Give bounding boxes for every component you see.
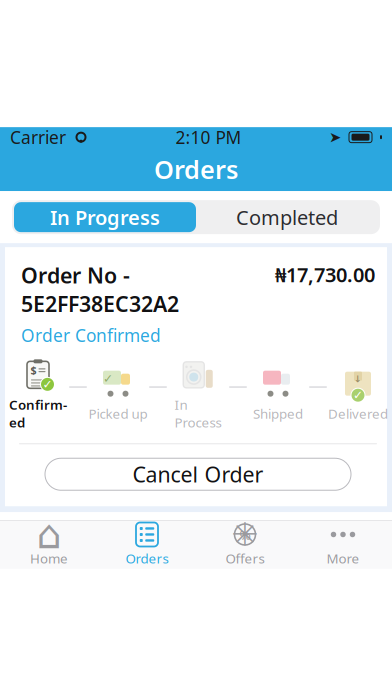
button[interactable]: More	[294, 521, 392, 569]
staticText: Offers	[225, 549, 264, 567]
button[interactable]: Cancel Order	[45, 458, 351, 490]
staticText: In Progress	[50, 204, 160, 230]
staticText: Delivered	[328, 405, 388, 422]
staticText: Picked up	[88, 405, 147, 422]
button[interactable]: ⌂	[0, 521, 98, 569]
staticText: ₦17,730.00	[275, 261, 375, 288]
staticText: ✓	[103, 372, 113, 385]
button[interactable]: In Progress	[14, 202, 196, 232]
staticText: Order No - 5E2FF38EC32A2	[21, 261, 179, 318]
staticText: Completed	[236, 204, 338, 230]
staticText: Orders	[125, 549, 168, 567]
button[interactable]: Completed	[196, 202, 378, 232]
staticText: More	[326, 549, 359, 567]
staticText: ➤	[329, 129, 341, 145]
button[interactable]: Orders	[98, 521, 196, 569]
staticText: Orders	[154, 152, 238, 186]
staticText: ✳	[231, 516, 258, 553]
staticText: ✓	[353, 388, 363, 402]
staticText: Shipped	[253, 405, 303, 422]
staticText: Confirmed	[9, 396, 67, 431]
staticText: $	[30, 363, 36, 377]
staticText: ⌂	[36, 512, 61, 557]
staticText: Order Confirmed	[21, 324, 161, 347]
staticText: Cancel Order	[132, 460, 263, 488]
staticText: %	[239, 526, 250, 543]
staticText: Home	[30, 549, 68, 567]
staticText: Carrier	[10, 126, 66, 149]
staticText: 2:10 PM	[175, 126, 241, 149]
staticText: In Process	[174, 396, 221, 431]
button[interactable]: ✳	[196, 521, 294, 569]
staticText: ↓	[354, 374, 362, 384]
staticText: ✓	[42, 377, 52, 391]
